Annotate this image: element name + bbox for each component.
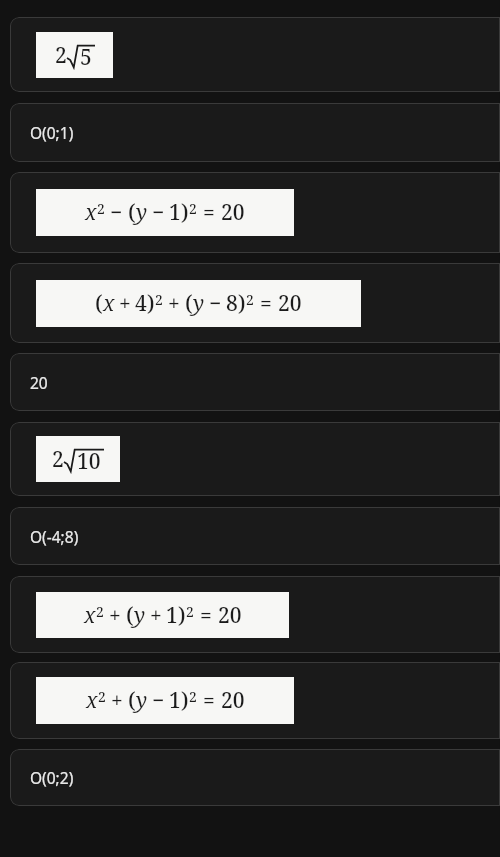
staticText: − bbox=[110, 198, 123, 227]
staticText: ) bbox=[181, 198, 189, 227]
staticText: 20 bbox=[30, 372, 48, 393]
staticText: 2 bbox=[55, 41, 67, 70]
button[interactable]: x bbox=[10, 662, 500, 739]
staticText: 1 bbox=[166, 601, 178, 630]
staticText: ( bbox=[95, 289, 103, 318]
staticText: + bbox=[150, 601, 162, 630]
button[interactable]: O(0;1) bbox=[10, 103, 500, 162]
staticText: − bbox=[152, 198, 165, 227]
staticText: O(0;1) bbox=[30, 122, 74, 143]
staticText: x bbox=[84, 601, 96, 630]
staticText: ( bbox=[185, 289, 193, 318]
staticText: ( bbox=[128, 686, 136, 715]
button[interactable]: O(0;2) bbox=[10, 749, 500, 806]
staticText: 2 bbox=[98, 687, 106, 706]
staticText: ( bbox=[126, 601, 134, 630]
staticText: 1 bbox=[169, 198, 181, 227]
staticText: 1 bbox=[169, 686, 181, 715]
staticText: ) bbox=[181, 686, 189, 715]
staticText: + bbox=[109, 601, 121, 630]
staticText: O(-4;8) bbox=[30, 526, 79, 547]
staticText: 2 bbox=[189, 199, 197, 218]
button[interactable]: x bbox=[10, 576, 500, 653]
staticText: = bbox=[260, 289, 272, 318]
button[interactable]: ( bbox=[10, 263, 500, 343]
staticText: 20 bbox=[278, 289, 302, 318]
staticText: x bbox=[85, 198, 97, 227]
staticText: ) bbox=[147, 289, 155, 318]
staticText: + bbox=[111, 686, 123, 715]
staticText: y bbox=[134, 601, 146, 630]
staticText: y bbox=[136, 198, 148, 227]
staticText: 2 bbox=[246, 290, 254, 309]
staticText: ) bbox=[178, 601, 186, 630]
staticText: O(0;2) bbox=[30, 767, 74, 788]
button[interactable]: 2 bbox=[10, 17, 500, 92]
staticText: 20 bbox=[221, 198, 245, 227]
staticText: 2 bbox=[186, 602, 194, 621]
button[interactable]: 20 bbox=[10, 353, 500, 411]
staticText: x bbox=[103, 289, 115, 318]
staticText: = bbox=[200, 601, 212, 630]
staticText: 2 bbox=[189, 687, 197, 706]
staticText: 4 bbox=[135, 289, 147, 318]
button[interactable]: O(-4;8) bbox=[10, 507, 500, 565]
staticText: − bbox=[152, 686, 165, 715]
staticText: x bbox=[86, 686, 98, 715]
staticText: 2 bbox=[52, 445, 64, 474]
staticText: + bbox=[168, 289, 180, 318]
staticText: = bbox=[203, 686, 215, 715]
staticText: 20 bbox=[221, 686, 245, 715]
staticText: 2 bbox=[96, 602, 104, 621]
staticText: y bbox=[193, 289, 205, 318]
staticText: 5 bbox=[80, 43, 92, 70]
staticText: ( bbox=[128, 198, 136, 227]
staticText: ) bbox=[238, 289, 246, 318]
staticText: 2 bbox=[97, 199, 105, 218]
staticText: 20 bbox=[218, 601, 242, 630]
staticText: − bbox=[209, 289, 222, 318]
staticText: 2 bbox=[155, 290, 163, 309]
staticText: y bbox=[136, 686, 148, 715]
button[interactable]: x bbox=[10, 172, 500, 253]
staticText: 8 bbox=[226, 289, 238, 318]
staticText: 10 bbox=[77, 447, 101, 474]
staticText: + bbox=[119, 289, 131, 318]
staticText: = bbox=[203, 198, 215, 227]
button[interactable]: 2 bbox=[10, 422, 500, 496]
